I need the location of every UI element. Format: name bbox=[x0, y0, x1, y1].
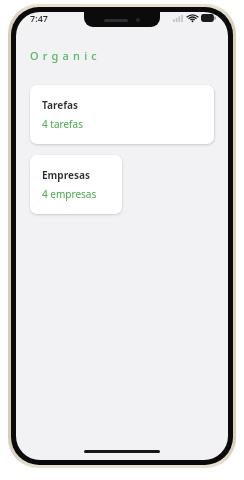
button[interactable]: Tarefas bbox=[30, 85, 214, 144]
staticText: Empresas bbox=[42, 168, 90, 182]
staticText: 7:47 bbox=[30, 12, 48, 24]
staticText: 4 empresas bbox=[42, 187, 97, 201]
staticText: Organic bbox=[30, 48, 101, 63]
staticText: Tarefas bbox=[42, 98, 79, 112]
staticText: 4 tarefas bbox=[42, 117, 83, 131]
button[interactable]: Empresas bbox=[30, 155, 122, 214]
